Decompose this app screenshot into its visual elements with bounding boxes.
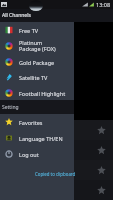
button[interactable]: Favorite (0, 140, 113, 160)
staticText: All Channels (2, 12, 31, 19)
staticText: Language TH/EN (19, 135, 63, 142)
other: Favorite (97, 126, 106, 135)
button[interactable]: Favorites (0, 114, 74, 130)
staticText: Football Highlight (19, 90, 66, 97)
staticText: Satellite TV (19, 74, 48, 81)
button[interactable]: Football Highlight (0, 85, 74, 101)
button[interactable]: Language TH/EN (0, 130, 74, 146)
staticText: Favorites (19, 119, 43, 126)
button[interactable]: Free TV (0, 22, 74, 38)
staticText: 13:08 (96, 1, 111, 8)
other: Favorite (97, 186, 106, 195)
staticText: Log out (19, 151, 39, 158)
button[interactable]: Favorite (0, 120, 113, 140)
button[interactable]: Platinum Package (FOX) (0, 38, 74, 54)
button[interactable]: Log out (0, 146, 74, 162)
button[interactable]: Favorite (0, 180, 113, 200)
staticText: Free TV (19, 27, 39, 34)
staticText: Gold Package (19, 59, 55, 66)
button[interactable]: Gold Package (0, 54, 74, 70)
staticText: Copied to clipboard (35, 171, 76, 177)
staticText: Platinum Package (FOX) (19, 39, 56, 53)
button[interactable]: Satellite TV (0, 69, 74, 85)
button[interactable]: Favorite (0, 160, 113, 180)
other: Favorite (97, 146, 106, 155)
other: Favorite (97, 166, 106, 175)
staticText: Setting (2, 104, 19, 111)
